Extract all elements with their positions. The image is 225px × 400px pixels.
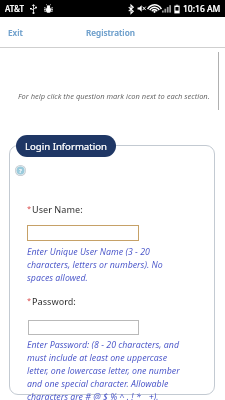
other: Battery [174, 4, 180, 14]
other: USB [30, 4, 37, 14]
button[interactable]: Login Information [16, 135, 116, 157]
button[interactable] [27, 225, 139, 241]
staticText: Enter Password: (8 - 20 characters, and … [27, 339, 190, 400]
staticText: AT&T [5, 3, 24, 14]
other: Wi-Fi [149, 4, 160, 13]
staticText: Exit [8, 27, 23, 38]
staticText: For help click the question mark icon ne… [18, 91, 210, 101]
staticText: Login Information [25, 140, 107, 153]
staticText: ? [19, 167, 22, 175]
button[interactable]: Help [15, 165, 26, 176]
button[interactable] [28, 320, 139, 335]
staticText: User Name: [32, 203, 83, 215]
other: Signal strength [162, 4, 171, 13]
other: Muted [137, 4, 146, 13]
button[interactable]: Exit [0, 19, 35, 46]
other: Developer options [44, 4, 53, 14]
staticText: * [27, 203, 32, 213]
staticText: 10:16 AM [183, 3, 221, 15]
button[interactable]: Registration [80, 19, 141, 46]
staticText: Registration [86, 27, 135, 38]
other: Bluetooth [128, 4, 134, 14]
staticText: Password: [32, 295, 76, 307]
staticText: * [27, 295, 32, 305]
staticText: Enter Unique User Name (3 - 20 character… [27, 246, 185, 284]
